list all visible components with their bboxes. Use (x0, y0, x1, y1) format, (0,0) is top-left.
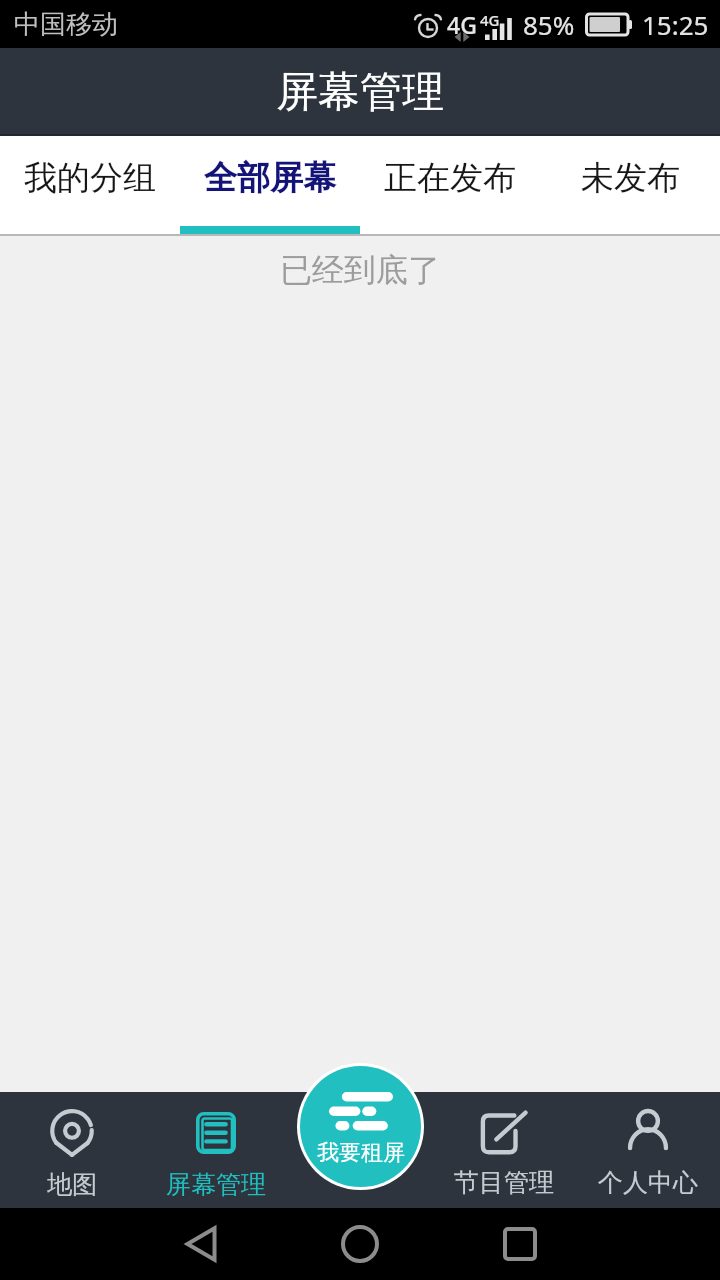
button[interactable]: 未发布 (540, 136, 720, 234)
button[interactable]: Back (173, 1214, 233, 1274)
staticText: 中国移动 (14, 8, 118, 41)
button[interactable]: 屏幕管理 (144, 1092, 288, 1208)
button[interactable]: 个人中心 (576, 1092, 720, 1208)
button[interactable]: Recents (490, 1214, 550, 1274)
staticText: 屏幕管理 (276, 66, 444, 119)
staticText: 我的分组 (24, 157, 156, 199)
button[interactable]: 全部屏幕 (180, 136, 360, 234)
button[interactable]: 地图 (0, 1092, 144, 1208)
staticText: 85% (523, 7, 575, 42)
staticText: 未发布 (581, 157, 680, 199)
staticText: 个人中心 (598, 1167, 698, 1198)
staticText: 屏幕管理 (166, 1169, 266, 1200)
staticText: 我要租屏 (317, 1139, 405, 1167)
staticText: 正在发布 (384, 157, 516, 199)
staticText: 4G (480, 10, 500, 30)
staticText: 15:25 (642, 7, 709, 42)
button[interactable]: 节目管理 (432, 1092, 576, 1208)
staticText: 地图 (47, 1169, 97, 1200)
button[interactable]: Home (330, 1214, 390, 1274)
staticText: 4G (447, 9, 477, 40)
staticText: 已经到底了 (280, 250, 440, 290)
button[interactable]: 正在发布 (360, 136, 540, 234)
button[interactable]: 我的分组 (0, 136, 180, 234)
staticText: 全部屏幕 (204, 157, 336, 199)
staticText: 节目管理 (454, 1167, 554, 1198)
button[interactable]: 我要租屏 (300, 1066, 421, 1187)
